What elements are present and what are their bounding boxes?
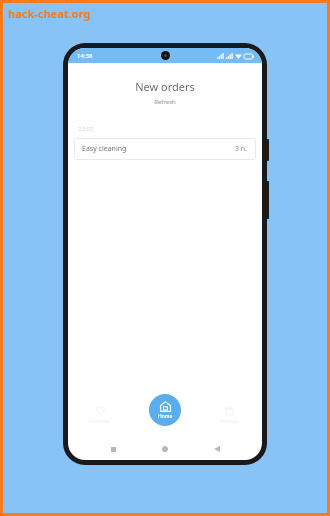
- staticText: Home: [158, 413, 173, 420]
- button[interactable]: Back: [210, 442, 224, 456]
- staticText: Favorites: [89, 418, 111, 425]
- staticText: Refresh: [154, 98, 176, 106]
- other: Settings: [224, 405, 235, 416]
- staticText: hack-cheat.org: [8, 6, 91, 21]
- staticText: 14:38: [77, 52, 93, 60]
- staticText: Easy cleaning: [82, 144, 127, 154]
- staticText: Settings: [220, 418, 240, 425]
- button[interactable]: Home: [158, 442, 172, 456]
- button[interactable]: Easy cleaning: [74, 138, 256, 160]
- other: Favorites: [95, 405, 106, 416]
- staticText: 22:07: [78, 125, 94, 133]
- button[interactable]: Refresh: [150, 97, 180, 107]
- button[interactable]: Recents: [106, 442, 120, 456]
- staticText: 3 h.: [235, 144, 248, 154]
- staticText: New orders: [135, 79, 195, 94]
- button[interactable]: Home: [149, 394, 181, 426]
